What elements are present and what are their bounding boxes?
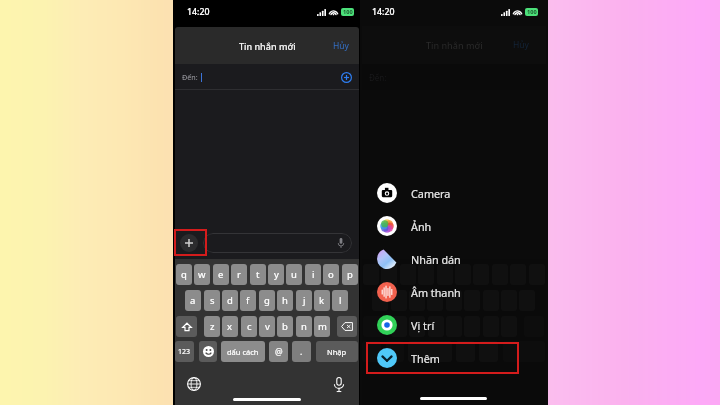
staticText: h bbox=[282, 294, 288, 307]
button[interactable]: e bbox=[213, 264, 229, 285]
staticText: u bbox=[291, 268, 297, 281]
button[interactable] bbox=[203, 233, 352, 253]
staticText: Hủy bbox=[333, 40, 349, 52]
staticText: q bbox=[181, 268, 187, 281]
button[interactable]: o bbox=[323, 264, 339, 285]
button[interactable]: n bbox=[296, 316, 312, 337]
button[interactable]: w bbox=[194, 264, 210, 285]
staticText: t bbox=[256, 268, 260, 281]
button[interactable]: d bbox=[222, 290, 238, 311]
button[interactable]: Âm thanh bbox=[360, 279, 548, 305]
button[interactable]: i bbox=[305, 264, 321, 285]
staticText: w bbox=[198, 268, 206, 281]
button[interactable]: Switch keyboard bbox=[187, 377, 201, 391]
staticText: o bbox=[328, 268, 334, 281]
staticText: z bbox=[210, 320, 215, 333]
button[interactable]: y bbox=[268, 264, 284, 285]
staticText: @ bbox=[275, 346, 283, 358]
button[interactable]: q bbox=[176, 264, 192, 285]
staticText: Tin nhắn mới bbox=[426, 39, 483, 51]
button[interactable]: s bbox=[204, 290, 220, 311]
button[interactable]: dấu cách bbox=[221, 341, 265, 362]
staticText: 100 bbox=[527, 8, 537, 16]
staticText: dấu cách bbox=[227, 347, 259, 357]
button[interactable]: b bbox=[277, 316, 293, 337]
staticText: m bbox=[318, 320, 327, 333]
staticText: d bbox=[227, 294, 233, 307]
staticText: v bbox=[265, 320, 270, 333]
button[interactable]: v bbox=[259, 316, 275, 337]
button[interactable]: Nhập bbox=[316, 341, 358, 362]
button[interactable]: u bbox=[286, 264, 302, 285]
button[interactable]: Vị trí bbox=[360, 312, 548, 338]
staticText: f bbox=[246, 294, 250, 307]
staticText: . bbox=[300, 346, 303, 358]
button[interactable]: z bbox=[204, 316, 220, 337]
staticText: 123 bbox=[178, 347, 191, 357]
button[interactable]: Camera bbox=[360, 180, 548, 206]
staticText: g bbox=[264, 294, 270, 307]
button[interactable]: Backspace bbox=[337, 316, 357, 337]
staticText: Thêm bbox=[411, 351, 440, 366]
button[interactable]: l bbox=[332, 290, 348, 311]
staticText: s bbox=[210, 294, 215, 307]
staticText: a bbox=[190, 294, 196, 307]
staticText: l bbox=[339, 294, 342, 307]
staticText: 100 bbox=[343, 8, 353, 16]
button[interactable]: Dictation bbox=[334, 377, 344, 392]
button[interactable]: More options bbox=[180, 234, 198, 252]
staticText: e bbox=[218, 268, 224, 281]
staticText: k bbox=[319, 294, 325, 307]
staticText: n bbox=[301, 320, 307, 333]
button[interactable]: f bbox=[240, 290, 256, 311]
button[interactable]: k bbox=[314, 290, 330, 311]
staticText: i bbox=[312, 268, 315, 281]
button[interactable]: g bbox=[259, 290, 275, 311]
staticText: Đến: bbox=[369, 72, 387, 83]
staticText: y bbox=[274, 268, 279, 281]
button[interactable]: 123 bbox=[175, 341, 194, 362]
button[interactable]: t bbox=[250, 264, 266, 285]
button[interactable]: a bbox=[185, 290, 201, 311]
staticText: 14:20 bbox=[187, 6, 210, 18]
staticText: 14:20 bbox=[372, 6, 395, 18]
staticText: Âm thanh bbox=[411, 285, 461, 300]
button[interactable]: Emoji bbox=[199, 341, 217, 362]
staticText: b bbox=[282, 320, 288, 333]
button[interactable]: Ảnh bbox=[360, 213, 548, 239]
staticText: r bbox=[237, 268, 241, 281]
button[interactable]: Shift bbox=[176, 316, 197, 337]
button[interactable]: . bbox=[292, 341, 311, 362]
staticText: p bbox=[347, 268, 353, 281]
staticText: Tin nhắn mới bbox=[239, 40, 296, 52]
button[interactable]: Thêm bbox=[360, 345, 548, 371]
staticText: Ảnh bbox=[411, 219, 432, 234]
staticText: x bbox=[227, 320, 233, 333]
button[interactable]: p bbox=[342, 264, 358, 285]
button[interactable]: @ bbox=[269, 341, 288, 362]
staticText: Nhãn dán bbox=[411, 252, 461, 267]
staticText: Đến: bbox=[182, 72, 198, 82]
button[interactable]: x bbox=[222, 316, 238, 337]
button[interactable]: h bbox=[277, 290, 293, 311]
button[interactable]: Hủy bbox=[323, 33, 359, 59]
button[interactable]: Nhãn dán bbox=[360, 246, 548, 272]
button[interactable]: r bbox=[231, 264, 247, 285]
staticText: c bbox=[247, 320, 252, 333]
staticText: Vị trí bbox=[411, 318, 435, 333]
staticText: j bbox=[303, 294, 306, 307]
staticText: Hủy bbox=[513, 39, 529, 51]
button[interactable]: Add contact bbox=[341, 72, 352, 83]
staticText: Camera bbox=[411, 186, 451, 201]
staticText: Nhập bbox=[327, 347, 347, 357]
button[interactable]: j bbox=[296, 290, 312, 311]
button[interactable]: c bbox=[241, 316, 257, 337]
button[interactable]: m bbox=[314, 316, 330, 337]
